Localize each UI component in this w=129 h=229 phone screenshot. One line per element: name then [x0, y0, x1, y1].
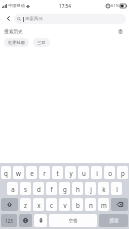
button[interactable]: a [7, 182, 18, 195]
button[interactable]: Shift [1, 198, 18, 211]
button[interactable]: b [72, 198, 83, 211]
staticText: u [82, 169, 86, 177]
staticText: f [50, 185, 53, 193]
staticText: g [63, 185, 67, 193]
button[interactable]: l [111, 182, 122, 195]
button[interactable]: m [98, 198, 109, 211]
button[interactable]: Backspace [111, 198, 128, 211]
staticText: m [101, 201, 107, 209]
button[interactable]: p [117, 166, 128, 179]
button[interactable]: g [59, 182, 70, 195]
staticText: 搜索 [109, 218, 119, 224]
staticText: a [11, 185, 15, 193]
staticText: t [56, 169, 59, 177]
button[interactable]: 三豆 [33, 38, 50, 47]
staticText: 搜索商品 [25, 16, 43, 22]
staticText: c [50, 201, 53, 209]
button[interactable]: y [65, 166, 76, 179]
button[interactable]: w [13, 166, 24, 179]
button[interactable]: c [46, 198, 57, 211]
button[interactable]: Switch language [19, 214, 32, 227]
staticText: q [4, 169, 8, 177]
staticText: l [116, 185, 118, 193]
staticText: 搜索历史 [4, 29, 23, 35]
button[interactable]: 搜索商品 [14, 14, 126, 24]
staticText: b [76, 201, 80, 209]
button[interactable]: u [78, 166, 89, 179]
staticText: x [37, 201, 41, 209]
button[interactable]: 红枣桂圆 [4, 38, 29, 47]
staticText: 17:54 [59, 3, 71, 9]
staticText: z [24, 201, 27, 209]
staticText: s [24, 185, 27, 193]
staticText: 中国移动 [8, 3, 25, 8]
button[interactable]: f [46, 182, 57, 195]
button[interactable]: o [104, 166, 115, 179]
button[interactable]: 123 [1, 214, 17, 227]
staticText: o [108, 169, 112, 177]
staticText: e [30, 169, 34, 177]
button[interactable]: Back [3, 13, 14, 24]
staticText: d [37, 185, 41, 193]
staticText: r [43, 169, 46, 177]
button[interactable]: d [33, 182, 44, 195]
button[interactable]: k [98, 182, 109, 195]
button[interactable]: z [20, 198, 31, 211]
button[interactable]: x [33, 198, 44, 211]
button[interactable]: q [1, 166, 11, 179]
staticText: y [69, 169, 73, 177]
button[interactable]: v [59, 198, 70, 211]
staticText: 红枣桂圆 [8, 40, 25, 45]
button[interactable]: 空格 [49, 214, 97, 227]
staticText: k [102, 185, 106, 193]
staticText: 三豆 [37, 40, 46, 45]
button[interactable]: Voice input [34, 214, 47, 227]
button[interactable]: Clear search history [116, 27, 125, 36]
staticText: 空格 [68, 218, 78, 224]
button[interactable]: h [72, 182, 83, 195]
staticText: j [90, 185, 92, 193]
staticText: w [16, 169, 21, 177]
button[interactable]: 搜索 [99, 214, 128, 227]
button[interactable]: e [26, 166, 37, 179]
staticText: h [76, 185, 80, 193]
staticText: p [121, 169, 125, 177]
staticText: 61% [111, 3, 119, 8]
button[interactable]: i [91, 166, 102, 179]
button[interactable]: r [39, 166, 50, 179]
staticText: n [89, 201, 93, 209]
staticText: i [96, 169, 98, 177]
button[interactable]: s [20, 182, 31, 195]
staticText: v [63, 201, 67, 209]
button[interactable]: j [85, 182, 96, 195]
button[interactable]: n [85, 198, 96, 211]
staticText: 123 [5, 218, 13, 224]
button[interactable]: t [52, 166, 63, 179]
